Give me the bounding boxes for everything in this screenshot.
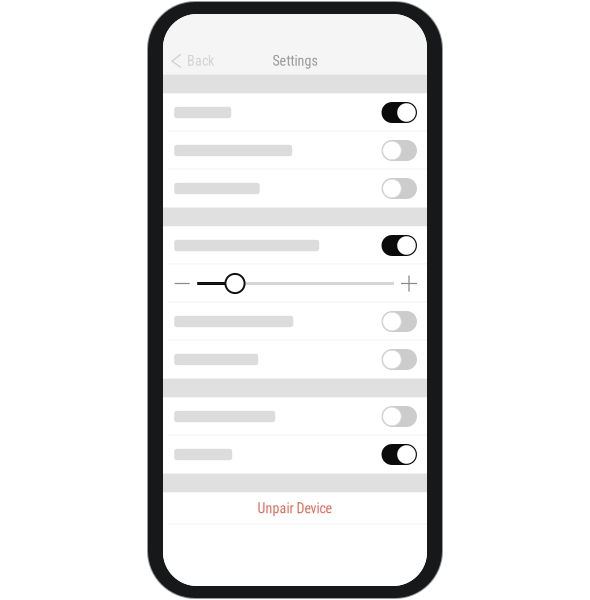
button[interactable]: Setting, off (163, 169, 427, 207)
button[interactable]: Setting, off (163, 302, 427, 340)
staticText: Unpair Device (257, 500, 332, 517)
button[interactable]: Setting, off (163, 397, 427, 435)
staticText: Settings (272, 53, 317, 69)
button[interactable]: Setting, on (163, 93, 427, 131)
staticText: Back (187, 53, 214, 69)
button[interactable]: Setting, on (163, 435, 427, 473)
button[interactable]: Back (163, 47, 220, 74)
button[interactable]: Unpair Device (163, 492, 427, 524)
button[interactable]: Setting, off (163, 340, 427, 378)
button[interactable]: Setting, on (163, 226, 427, 264)
button[interactable]: Setting, off (163, 131, 427, 169)
